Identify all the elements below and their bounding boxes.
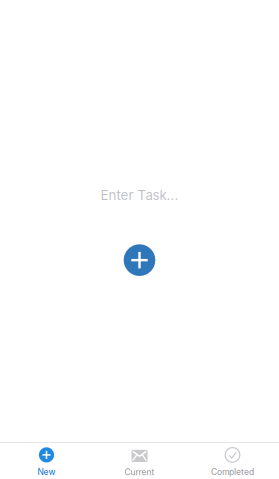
button[interactable]: Add task [119, 240, 159, 280]
button[interactable]: New [0, 443, 93, 479]
button[interactable]: Current [93, 443, 186, 479]
staticText: New [37, 467, 55, 477]
button[interactable]: Completed [186, 443, 279, 479]
staticText: Current [124, 467, 154, 477]
staticText: Enter Task... [100, 187, 178, 203]
staticText: Completed [211, 467, 254, 477]
